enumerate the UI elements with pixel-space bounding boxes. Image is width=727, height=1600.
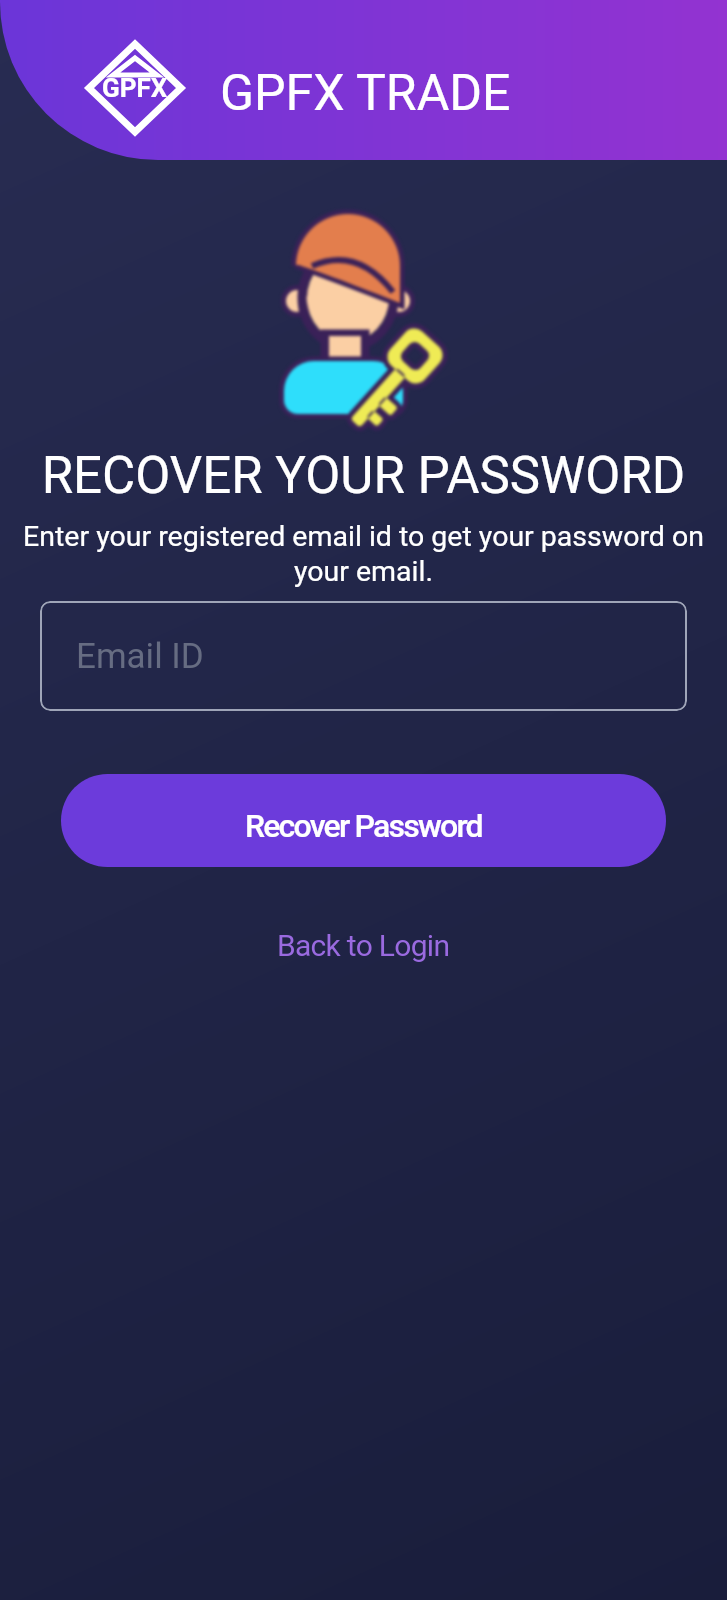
staticText: GPFX	[102, 73, 168, 103]
button[interactable]: Email ID	[40, 601, 687, 711]
staticText: GPFX TRADE	[220, 64, 511, 123]
button[interactable]: Back to Login	[269, 920, 458, 971]
button[interactable]: Recover Password	[61, 774, 666, 867]
staticText: Enter your registered email id to get yo…	[0, 520, 727, 588]
staticText: Recover Password	[245, 807, 482, 845]
staticText: Back to Login	[277, 928, 450, 963]
staticText: Email ID	[76, 636, 204, 677]
staticText: RECOVER YOUR PASSWORD	[0, 446, 727, 506]
